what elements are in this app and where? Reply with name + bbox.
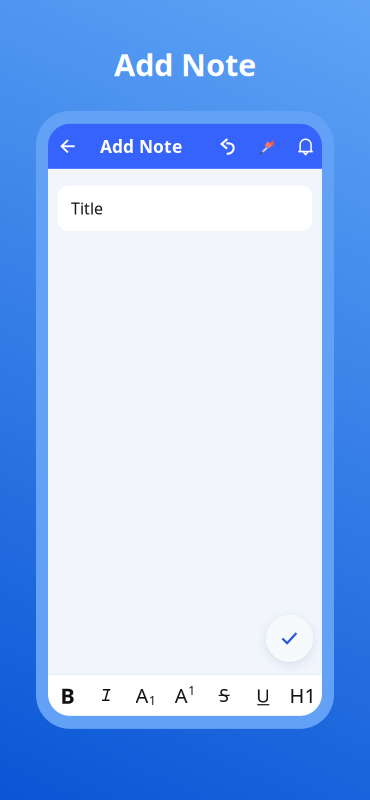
staticText: 1 bbox=[149, 692, 156, 708]
button[interactable]: S bbox=[205, 675, 244, 716]
staticText: B bbox=[61, 681, 75, 709]
button[interactable]: Subscript bbox=[126, 675, 165, 716]
staticText: H1 bbox=[289, 682, 315, 709]
staticText: A bbox=[175, 682, 188, 709]
button[interactable]: B bbox=[48, 675, 87, 716]
button[interactable]: Italic bbox=[87, 675, 126, 716]
staticText: A bbox=[136, 682, 149, 709]
button[interactable]: H1 bbox=[283, 675, 322, 716]
staticText: S bbox=[219, 684, 229, 707]
staticText: U bbox=[256, 683, 270, 708]
staticText: 1 bbox=[188, 682, 195, 698]
button[interactable]: Undo bbox=[208, 124, 247, 169]
button[interactable]: Reminder bbox=[286, 124, 325, 169]
staticText: Add Note bbox=[114, 44, 256, 85]
staticText: Add Note bbox=[100, 135, 182, 158]
button[interactable]: Superscript bbox=[165, 675, 204, 716]
button[interactable]: Save note bbox=[266, 615, 313, 662]
button[interactable]: U bbox=[244, 675, 283, 716]
staticText: Title bbox=[71, 198, 103, 219]
button[interactable]: Pin note bbox=[247, 124, 286, 169]
button[interactable]: Back bbox=[55, 124, 81, 169]
